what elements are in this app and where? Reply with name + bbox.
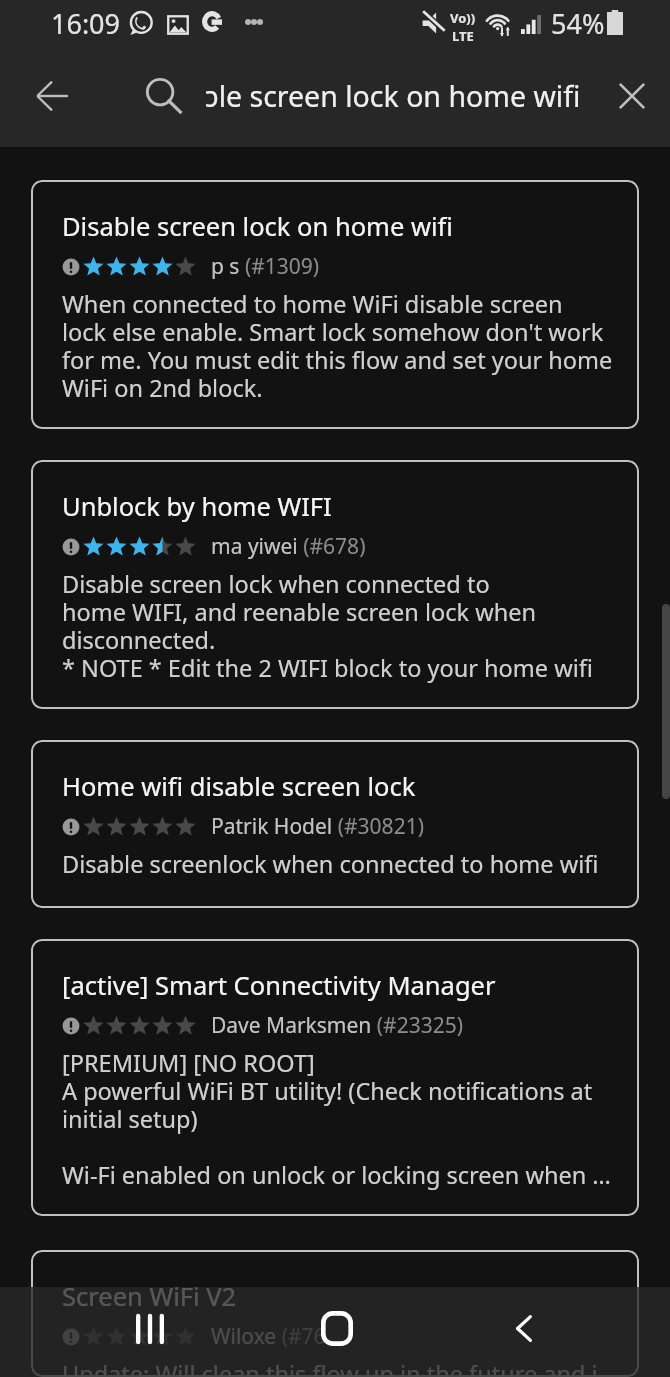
button[interactable]: Clear search <box>606 70 658 122</box>
staticText: Vo)) <box>450 9 476 27</box>
staticText: Unblock by home WIFI <box>62 489 332 524</box>
staticText: Wiloxe (#76 <box>211 1322 326 1351</box>
staticText: Disable screenlock when connected to hom… <box>62 848 599 880</box>
staticText: Screen WiFi V2 <box>62 1279 237 1314</box>
staticText: When connected to home WiFi disable scre… <box>62 288 613 404</box>
staticText: 54% <box>551 5 605 42</box>
staticText: p s (#1309) <box>211 252 320 281</box>
button[interactable]: Back <box>26 70 78 122</box>
staticText: [PREMIUM] [NO ROOT] A powerful WiFi BT u… <box>62 1047 611 1191</box>
staticText: Home wifi disable screen lock <box>62 769 416 804</box>
button[interactable]: Home wifi disable screen lock <box>31 740 639 908</box>
staticText: Update: Will clean this flow up in the f… <box>62 1358 598 1377</box>
staticText: Disable screen lock when connected to ho… <box>62 568 593 684</box>
staticText: Dave Marksmen (#23325) <box>211 1011 463 1040</box>
button[interactable]: [active] Smart Connectivity Manager <box>31 939 639 1216</box>
button[interactable]: Back <box>486 1290 562 1366</box>
button[interactable]: Unblock by home WIFI <box>31 460 639 709</box>
staticText: ma yiwei (#678) <box>211 532 366 561</box>
button[interactable]: Disable screen lock on home wifi <box>31 180 639 429</box>
button[interactable]: Recent apps <box>112 1291 188 1367</box>
staticText: ɔle screen lock on home wifi <box>205 77 581 116</box>
staticText: [active] Smart Connectivity Manager <box>62 968 496 1003</box>
staticText: Patrik Hodel (#30821) <box>211 812 424 841</box>
button[interactable]: Home <box>299 1290 375 1366</box>
button[interactable]: Screen WiFi V2 <box>31 1250 639 1377</box>
staticText: LTE <box>452 27 474 45</box>
staticText: Disable screen lock on home wifi <box>62 209 453 244</box>
staticText: 16:09 <box>51 5 121 42</box>
